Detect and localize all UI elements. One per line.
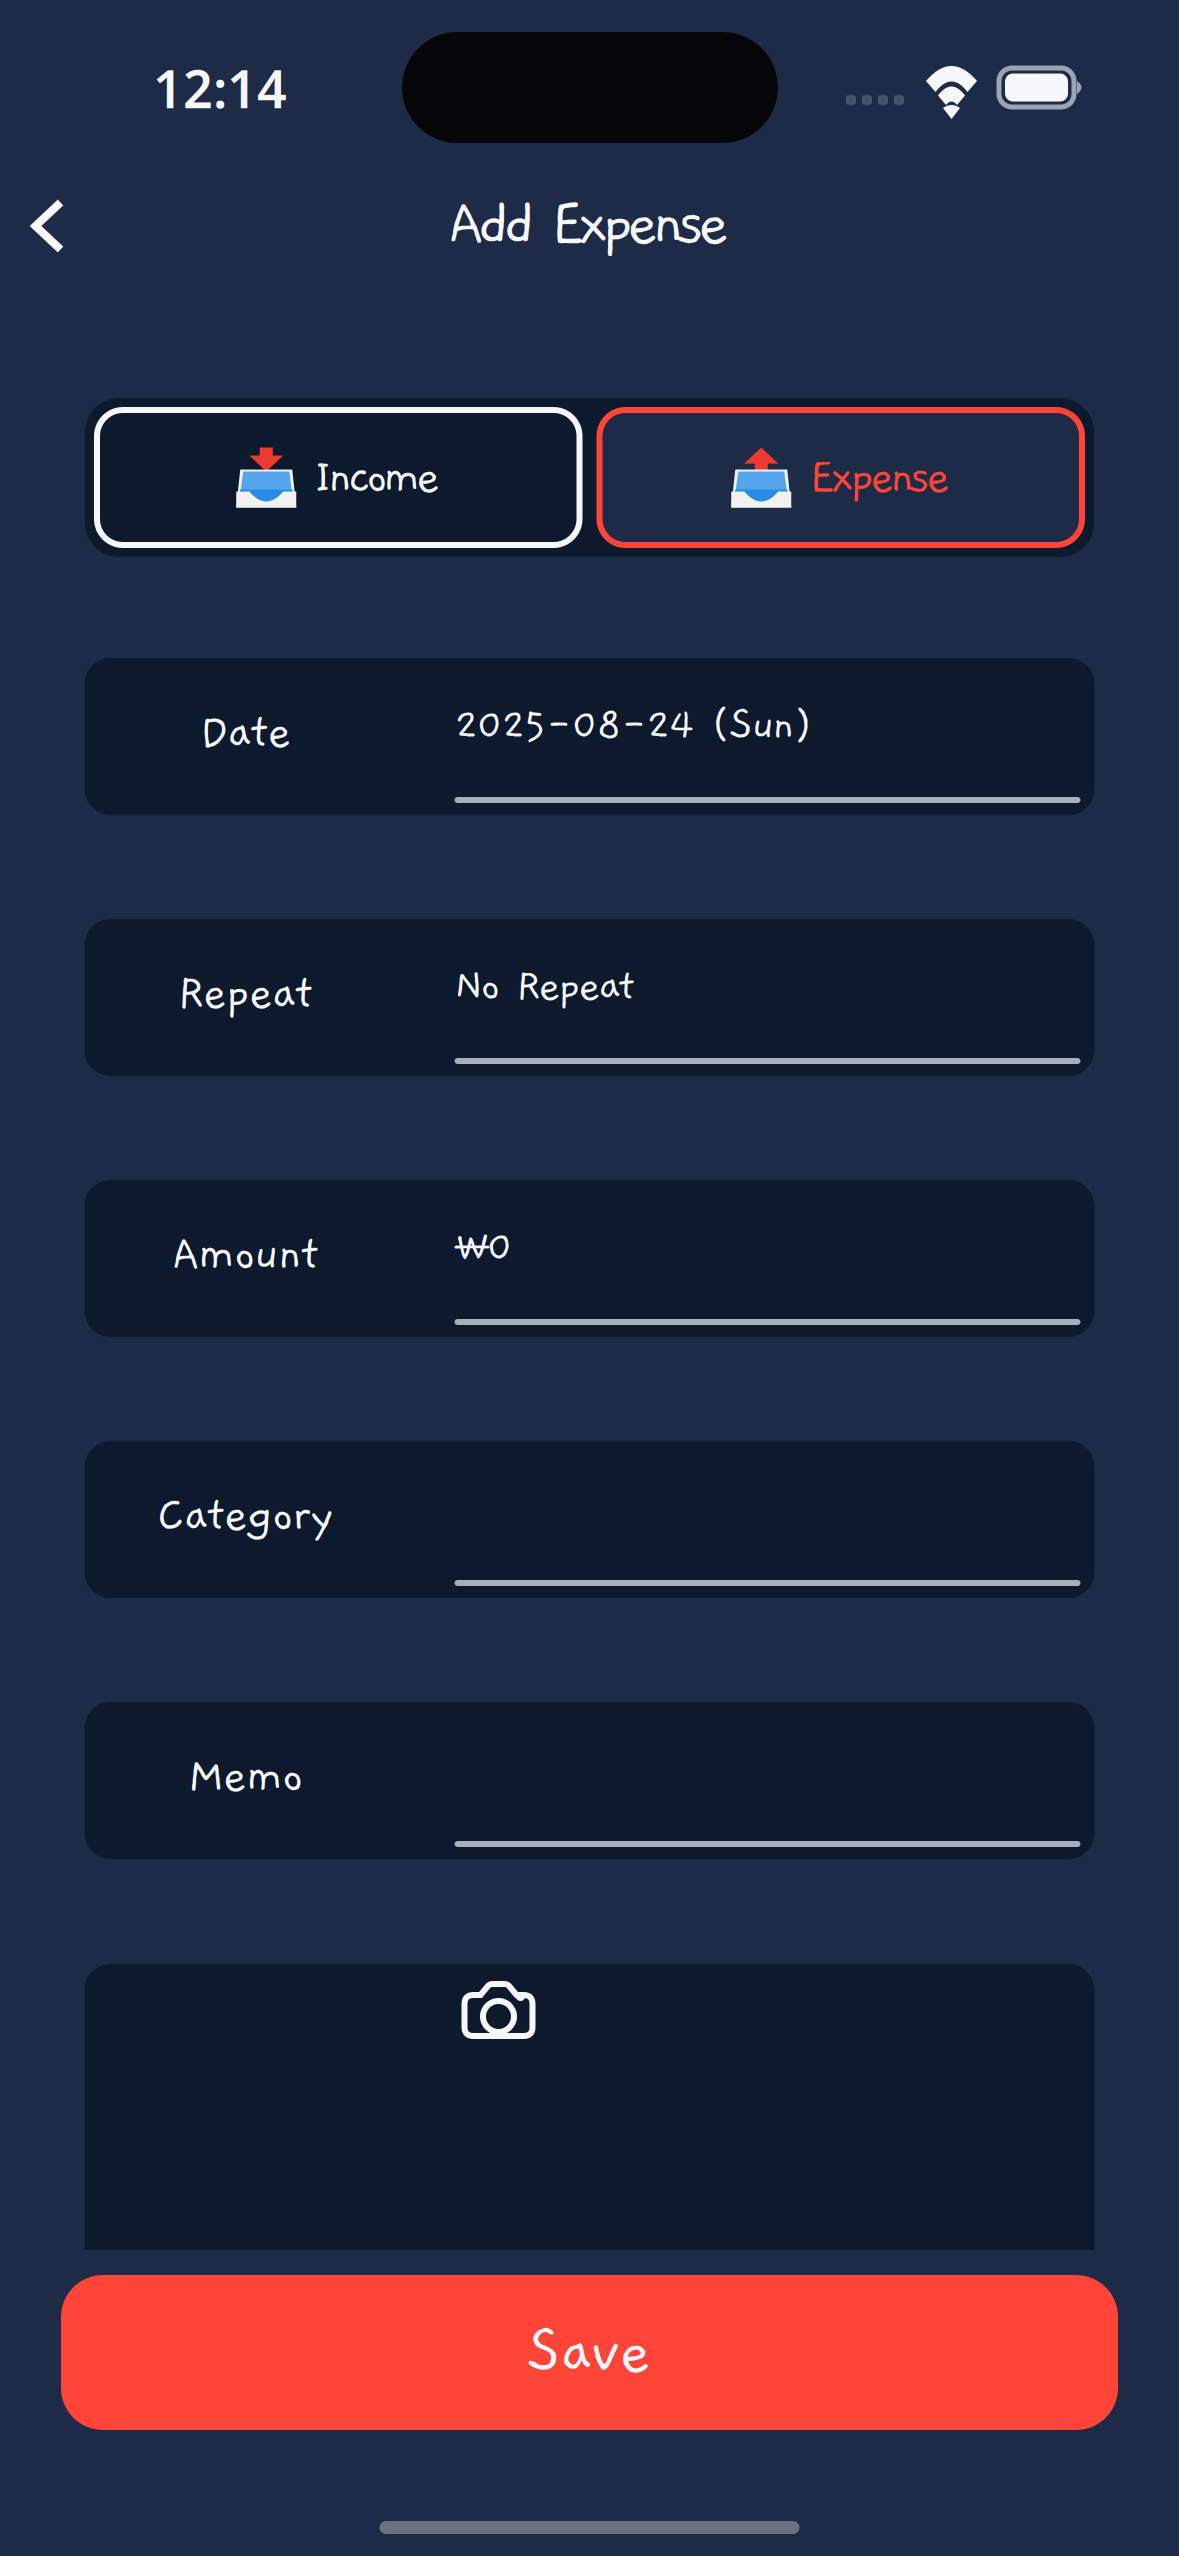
staticText: Expense [809, 452, 950, 503]
button[interactable]: Back [0, 178, 96, 274]
staticText: Memo [188, 1751, 303, 1802]
button[interactable]: Save [61, 2275, 1118, 2430]
staticText: Amount [172, 1229, 319, 1280]
staticText: Save [527, 2319, 651, 2386]
button[interactable]: Expense [599, 410, 1082, 545]
staticText: 12:14 [153, 53, 287, 123]
staticText: ₩0 [454, 1224, 513, 1271]
staticText: Add Expense [448, 191, 730, 257]
staticText: Repeat [178, 968, 313, 1019]
button[interactable]: Repeat [84, 919, 1094, 1076]
button[interactable]: Amount [84, 1180, 1094, 1337]
staticText: 2025-08-24 (Sun) [454, 702, 813, 749]
button[interactable]: Income [97, 410, 579, 545]
button[interactable]: Memo [84, 1702, 1094, 1859]
staticText: No Repeat [454, 963, 634, 1010]
button[interactable]: Date [84, 658, 1094, 815]
button[interactable]: Category [84, 1441, 1094, 1598]
button[interactable]: Add photo [438, 1964, 558, 2050]
staticText: Income [314, 452, 440, 503]
staticText: Date [199, 707, 291, 758]
staticText: Category [157, 1490, 334, 1541]
